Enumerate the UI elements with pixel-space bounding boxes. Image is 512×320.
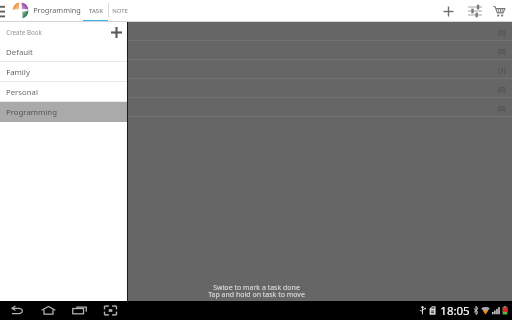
staticText: Tap and hold on task to move xyxy=(208,290,305,300)
button[interactable]: (0) xyxy=(0,98,512,117)
staticText: Default xyxy=(6,47,33,58)
button[interactable]: Add task xyxy=(441,2,456,20)
staticText: (1) xyxy=(498,66,506,74)
button[interactable]: (0) xyxy=(0,79,512,98)
staticText: Programming xyxy=(6,107,57,118)
staticText: Create Book xyxy=(6,28,42,36)
staticText: Swipe to mark a task done xyxy=(213,283,300,290)
staticText: Personal xyxy=(6,87,38,98)
button[interactable]: Open navigation drawer xyxy=(0,0,6,22)
button[interactable]: Personal xyxy=(0,82,128,102)
staticText: (0) xyxy=(498,28,506,36)
button[interactable]: Default xyxy=(0,42,128,62)
button[interactable]: Create Book xyxy=(0,22,128,42)
button[interactable]: Filter and sort xyxy=(467,2,482,20)
staticText: 18:05 xyxy=(440,303,470,319)
button[interactable]: (1) xyxy=(0,60,512,79)
button[interactable]: Screenshot xyxy=(95,301,126,320)
staticText: (0) xyxy=(498,85,506,93)
staticText: NOTE xyxy=(112,7,128,15)
button[interactable]: Back xyxy=(2,301,33,320)
other: Create book xyxy=(110,26,123,39)
staticText: Family xyxy=(6,67,30,78)
button[interactable]: NOTE xyxy=(108,0,132,22)
staticText: (0) xyxy=(498,104,506,112)
staticText: Programming xyxy=(33,5,81,15)
button[interactable]: (0) xyxy=(0,22,512,41)
button[interactable]: (0) xyxy=(0,41,512,60)
button[interactable]: Store xyxy=(491,2,506,20)
button[interactable]: TASK xyxy=(83,0,108,22)
button[interactable]: Family xyxy=(0,62,128,82)
staticText: TASK xyxy=(89,7,103,15)
button[interactable]: Recent apps xyxy=(64,301,95,320)
button[interactable]: Programming xyxy=(0,102,128,122)
staticText: (0) xyxy=(498,47,506,55)
button[interactable]: Home xyxy=(33,301,64,320)
